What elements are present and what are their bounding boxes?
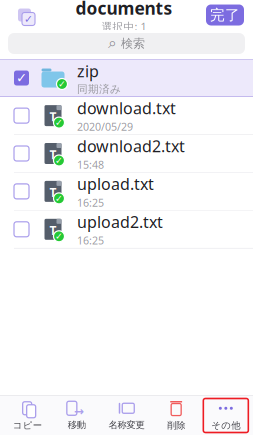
staticText: 同期済み xyxy=(77,83,121,96)
button[interactable]: コピー xyxy=(5,398,50,432)
button[interactable]: 名称変更 xyxy=(104,398,149,432)
button[interactable]: → xyxy=(54,398,99,432)
staticText: 2020/05/29 xyxy=(77,120,133,134)
staticText: 名称変更 xyxy=(108,419,144,431)
staticText: ✓ xyxy=(55,193,63,204)
staticText: 選択中: 1 xyxy=(101,19,146,34)
staticText: T xyxy=(49,222,56,238)
button[interactable]: その他 xyxy=(203,398,248,432)
staticText: 移動 xyxy=(68,419,86,431)
button[interactable]: ⌕ xyxy=(0,30,253,59)
button[interactable]: 削除 xyxy=(154,398,199,432)
staticText: 16:25 xyxy=(77,195,104,210)
staticText: download.txt xyxy=(77,97,176,119)
staticText: documents xyxy=(75,0,172,19)
staticText: ✓ xyxy=(55,117,63,128)
staticText: 16:25 xyxy=(77,233,104,247)
staticText: その他 xyxy=(211,420,240,431)
staticText: T xyxy=(49,109,56,124)
button[interactable]: 完了 xyxy=(206,4,244,25)
staticText: コピー xyxy=(13,420,42,431)
button[interactable]: T xyxy=(0,173,253,211)
staticText: upload.txt xyxy=(77,173,154,194)
staticText: ✓ xyxy=(16,70,27,85)
button[interactable]: T xyxy=(0,97,253,135)
staticText: ⌕ xyxy=(108,36,117,51)
button[interactable]: すべて選択 xyxy=(0,0,42,30)
staticText: 削除 xyxy=(167,420,185,431)
staticText: ✓ xyxy=(24,13,33,25)
staticText: 完了 xyxy=(210,6,240,24)
staticText: ✓ xyxy=(55,155,63,166)
staticText: zip xyxy=(77,60,99,81)
staticText: T xyxy=(49,184,56,200)
staticText: ✓ xyxy=(58,79,66,89)
staticText: 15:48 xyxy=(77,157,104,172)
staticText: ✓ xyxy=(55,231,63,242)
staticText: T xyxy=(49,146,56,162)
button[interactable]: T xyxy=(0,135,253,173)
staticText: upload2.txt xyxy=(77,211,163,232)
staticText: download2.txt xyxy=(77,135,185,156)
button[interactable]: ✓ xyxy=(0,59,253,97)
button[interactable]: T xyxy=(0,211,253,249)
staticText: 検索 xyxy=(121,36,145,51)
staticText: → xyxy=(74,404,84,418)
